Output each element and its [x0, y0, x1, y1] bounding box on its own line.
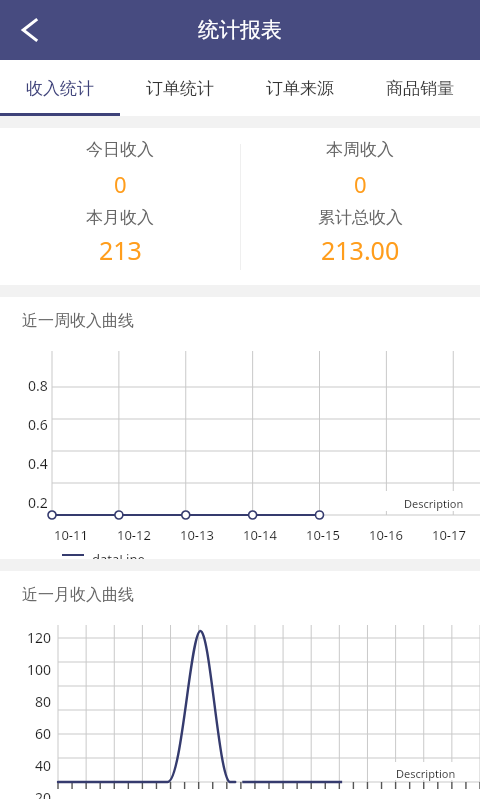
staticText: 0.6: [28, 415, 48, 434]
staticText: 0.8: [28, 376, 48, 395]
staticText: 80: [35, 692, 52, 711]
staticText: 20: [35, 788, 52, 799]
staticText: 213: [99, 233, 142, 267]
staticText: 10-15: [306, 526, 340, 544]
button[interactable]: 商品销量: [360, 60, 480, 116]
staticText: Description: [396, 766, 456, 781]
button[interactable]: Back: [0, 0, 62, 60]
staticText: 120: [27, 628, 52, 647]
staticText: dataLine: [92, 550, 145, 559]
staticText: 本周收入: [326, 139, 394, 160]
staticText: 10-12: [117, 526, 151, 544]
staticText: 订单统计: [146, 78, 214, 99]
staticText: 213.00: [321, 233, 400, 267]
staticText: 订单来源: [266, 78, 334, 99]
staticText: 0: [114, 169, 127, 199]
staticText: 近一月收入曲线: [22, 585, 134, 605]
staticText: 10-11: [54, 526, 88, 544]
staticText: 商品销量: [386, 78, 454, 99]
staticText: 0: [354, 169, 367, 199]
staticText: 0.4: [28, 454, 48, 473]
staticText: 近一周收入曲线: [22, 311, 134, 331]
staticText: 60: [35, 724, 52, 743]
staticText: 本月收入: [86, 207, 154, 228]
staticText: 0.2: [28, 493, 48, 512]
staticText: 统计报表: [198, 17, 282, 43]
staticText: 今日收入: [86, 139, 154, 160]
staticText: 10-17: [432, 526, 466, 544]
staticText: 10-13: [180, 526, 214, 544]
staticText: 累计总收入: [318, 207, 403, 228]
staticText: 40: [35, 756, 52, 775]
staticText: Description: [404, 496, 464, 511]
button[interactable]: 订单统计: [120, 60, 240, 116]
staticText: 收入统计: [26, 78, 94, 99]
button[interactable]: 订单来源: [240, 60, 360, 116]
staticText: 10-14: [243, 526, 277, 544]
button[interactable]: 收入统计: [0, 60, 120, 116]
staticText: 100: [27, 660, 52, 679]
staticText: 10-16: [369, 526, 403, 544]
